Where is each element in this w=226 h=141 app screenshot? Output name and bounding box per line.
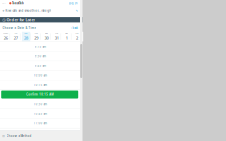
button[interactable]: SUN — [32, 32, 42, 41]
staticText: Log In — [69, 1, 78, 5]
button[interactable]: Confirm 10:15 AM — [1, 90, 78, 98]
staticText: ToastTab — [12, 1, 24, 5]
staticText: WED — [65, 33, 68, 34]
button[interactable]: FRI — [12, 32, 22, 41]
button[interactable]: 9:15 am — [0, 42, 80, 52]
button[interactable]: 9:45 am — [0, 61, 80, 71]
staticText: 29 — [34, 35, 38, 40]
button[interactable]: 10:00 am — [0, 71, 80, 80]
staticText: 10:45 am — [33, 112, 46, 115]
button[interactable]: SAT — [22, 32, 32, 41]
button[interactable]: 10:15 am — [0, 80, 80, 90]
staticText: Choose a Date & Time — [2, 26, 36, 30]
staticText: 30 — [44, 35, 48, 40]
staticText: SUN — [35, 33, 38, 34]
button[interactable]: ▤ — [0, 130, 80, 141]
staticText: 1 — [66, 35, 68, 40]
button[interactable]: MON — [42, 32, 52, 41]
button[interactable]: THU — [73, 32, 83, 41]
staticText: Kiwi cafe and smoothies - raleigh — [5, 9, 51, 12]
staticText: 2 — [76, 35, 78, 40]
staticText: ⌖ — [2, 9, 4, 13]
button[interactable]: 10:45 am — [0, 109, 80, 119]
staticText: 28 — [24, 35, 28, 40]
staticText: 27 — [14, 35, 18, 40]
button[interactable]: 9:30 am — [0, 52, 80, 61]
button[interactable]: Log In — [69, 1, 78, 5]
staticText: 9:45 am — [34, 64, 45, 68]
button[interactable]: 10:30 am — [0, 99, 80, 109]
staticText: SAT — [24, 33, 27, 34]
button[interactable]: TUE — [52, 32, 63, 41]
staticText: ✎ — [76, 9, 78, 12]
button[interactable]: 11:00 am — [0, 119, 80, 128]
staticText: 11:00 am — [33, 122, 46, 125]
staticText: THURS — [3, 33, 8, 34]
staticText: Confirm 10:15 AM — [26, 93, 53, 96]
staticText: 10:15 am — [33, 83, 46, 87]
staticText: ◷ — [2, 17, 5, 22]
staticText: 9:15 am — [34, 45, 45, 48]
staticText: TUE — [55, 33, 58, 34]
staticText: Order for Later — [6, 17, 35, 22]
staticText: 10:00 am — [33, 74, 46, 77]
staticText: ‹ back — [71, 26, 78, 30]
button[interactable]: WED — [63, 32, 73, 41]
staticText: ≡ ⌂ ⌾ ⌾ — [2, 2, 6, 4]
staticText: 26 — [4, 35, 8, 40]
button[interactable]: ‹ back — [71, 26, 78, 30]
staticText: ▤ — [2, 134, 5, 137]
staticText: 10:30 am — [33, 102, 46, 106]
staticText: 9:30 am — [34, 54, 45, 58]
button[interactable]: ⌖ — [0, 6, 80, 15]
staticText: MON — [45, 33, 48, 34]
staticText: 31 — [55, 35, 59, 40]
button[interactable]: THURS — [1, 32, 12, 41]
staticText: FRI — [15, 33, 17, 34]
staticText: Choose a Method — [7, 134, 32, 138]
staticText: THU — [75, 33, 78, 34]
